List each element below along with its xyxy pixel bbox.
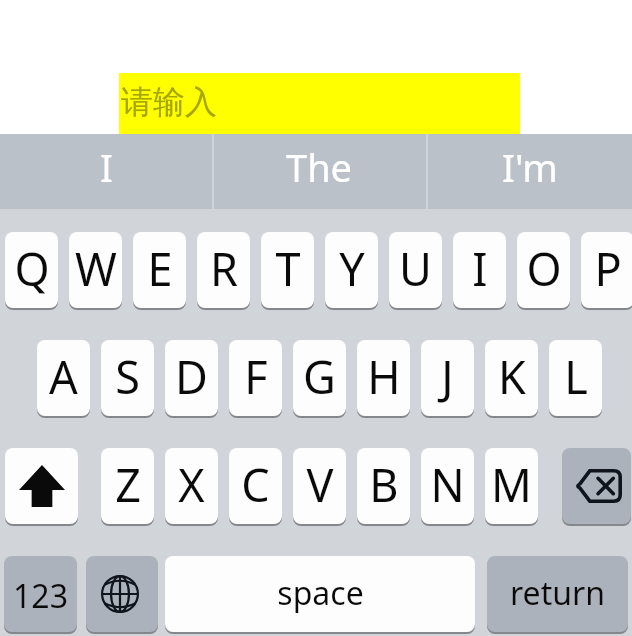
button[interactable]: return [487, 556, 628, 632]
staticText: O [526, 238, 562, 299]
staticText: E [147, 238, 173, 299]
staticText: G [303, 346, 336, 407]
staticText: H [367, 346, 401, 407]
staticText: S [115, 346, 140, 407]
button[interactable]: C [229, 448, 282, 524]
button[interactable]: F [229, 340, 282, 416]
staticText: return [510, 571, 605, 615]
button[interactable]: The [213, 134, 426, 209]
staticText: R [210, 238, 238, 299]
staticText: F [244, 346, 268, 407]
staticText: Q [14, 238, 50, 299]
staticText: U [399, 238, 432, 299]
staticText: D [175, 346, 208, 407]
staticText: T [275, 238, 301, 299]
button[interactable]: A [37, 340, 90, 416]
staticText: L [564, 346, 588, 407]
staticText: 请输入 [121, 82, 217, 122]
button[interactable]: K [485, 340, 538, 416]
button[interactable]: M [485, 448, 538, 524]
staticText: J [441, 346, 454, 407]
button[interactable]: E [133, 232, 186, 308]
staticText: W [75, 238, 117, 299]
button[interactable]: S [101, 340, 154, 416]
button[interactable]: H [357, 340, 410, 416]
button[interactable]: V [293, 448, 346, 524]
button[interactable]: Y [325, 232, 378, 308]
button[interactable]: Change keyboard [86, 556, 158, 632]
staticText: B [369, 454, 399, 515]
staticText: Z [115, 454, 141, 515]
button[interactable]: I [0, 134, 213, 209]
button[interactable]: 123 [4, 556, 77, 632]
staticText: I [100, 141, 113, 193]
staticText: A [49, 346, 78, 407]
button[interactable]: O [517, 232, 570, 308]
button[interactable]: I [453, 232, 506, 308]
staticText: K [498, 346, 526, 407]
button[interactable]: Q [5, 232, 58, 308]
staticText: M [491, 454, 532, 515]
button[interactable]: L [549, 340, 602, 416]
staticText: P [594, 238, 622, 299]
button[interactable]: R [197, 232, 250, 308]
staticText: Y [339, 238, 365, 299]
button[interactable]: N [421, 448, 474, 524]
staticText: X [178, 454, 205, 515]
staticText: I [472, 238, 488, 299]
staticText: The [286, 141, 353, 193]
button[interactable]: Shift [5, 448, 78, 524]
button[interactable]: Backspace [562, 448, 631, 524]
staticText: space [277, 571, 364, 615]
button[interactable]: space [165, 556, 475, 632]
staticText: I'm [502, 141, 558, 193]
button[interactable]: W [69, 232, 122, 308]
button[interactable]: Z [101, 448, 154, 524]
button[interactable]: J [421, 340, 474, 416]
button[interactable]: P [581, 232, 632, 308]
staticText: 123 [13, 574, 68, 618]
staticText: C [241, 454, 270, 515]
staticText: N [430, 454, 465, 515]
button[interactable]: B [357, 448, 410, 524]
button[interactable]: T [261, 232, 314, 308]
button[interactable]: G [293, 340, 346, 416]
button[interactable]: U [389, 232, 442, 308]
button[interactable]: 请输入 [119, 73, 520, 135]
button[interactable]: I'm [427, 134, 632, 209]
staticText: V [306, 454, 334, 515]
button[interactable]: X [165, 448, 218, 524]
button[interactable]: D [165, 340, 218, 416]
